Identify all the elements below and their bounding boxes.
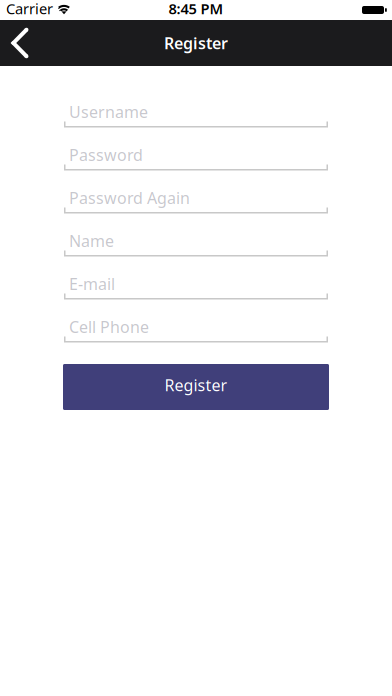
button[interactable]: Password Again [64,170,328,213]
staticText: Carrier [6,0,53,18]
button[interactable]: Name [64,213,328,256]
staticText: Name [69,230,114,251]
staticText: Password [69,144,143,165]
button[interactable]: Cell Phone [64,299,328,342]
staticText: Cell Phone [69,316,149,337]
button[interactable]: E-mail [64,256,328,299]
staticText: Register [164,374,227,396]
button[interactable]: Username [64,84,328,127]
button[interactable]: Register [63,364,329,410]
staticText: Register [164,32,228,54]
button[interactable]: Password [64,127,328,170]
staticText: E-mail [69,273,115,294]
staticText: Password Again [69,187,190,208]
staticText: Username [69,101,148,122]
staticText: 8:45 PM [168,0,223,18]
button[interactable]: Back [0,20,41,66]
